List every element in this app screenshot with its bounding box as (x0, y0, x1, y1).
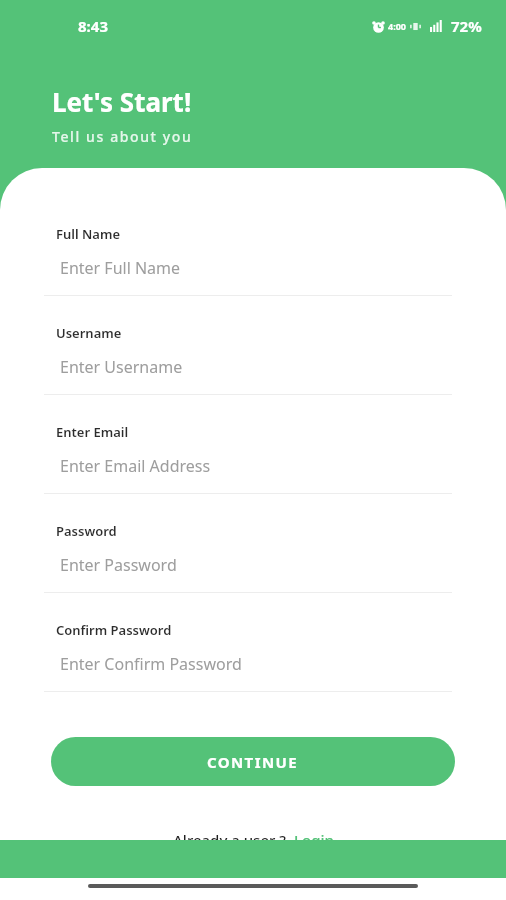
button[interactable]: Login (294, 830, 334, 840)
button[interactable]: Password (0, 522, 506, 593)
staticText: Login (294, 830, 334, 840)
staticText: Password (56, 522, 117, 540)
staticText: Username (56, 324, 122, 342)
staticText: Enter Password (60, 554, 177, 576)
staticText: Confirm Password (56, 621, 172, 639)
button[interactable]: Confirm Password (0, 621, 506, 692)
staticText: Enter Username (60, 356, 183, 378)
button[interactable]: Username (0, 324, 506, 395)
staticText: 72% (451, 16, 482, 36)
button[interactable]: CONTINUE (51, 737, 455, 786)
staticText: 8:43 (78, 16, 108, 36)
staticText: Already a user ? (173, 830, 286, 840)
staticText: Enter Full Name (60, 257, 181, 279)
staticText: Tell us about you (52, 127, 193, 146)
button[interactable]: Enter Email (0, 423, 506, 494)
staticText: Enter Email (56, 423, 129, 441)
staticText: Full Name (56, 225, 121, 243)
button[interactable]: Full Name (0, 225, 506, 296)
staticText: Enter Email Address (60, 455, 211, 477)
staticText: CONTINUE (207, 752, 299, 772)
staticText: Enter Confirm Password (60, 653, 242, 675)
other: Home gesture bar (88, 884, 418, 888)
staticText: 4:00 (388, 20, 406, 32)
staticText: Let's Start! (52, 84, 192, 119)
